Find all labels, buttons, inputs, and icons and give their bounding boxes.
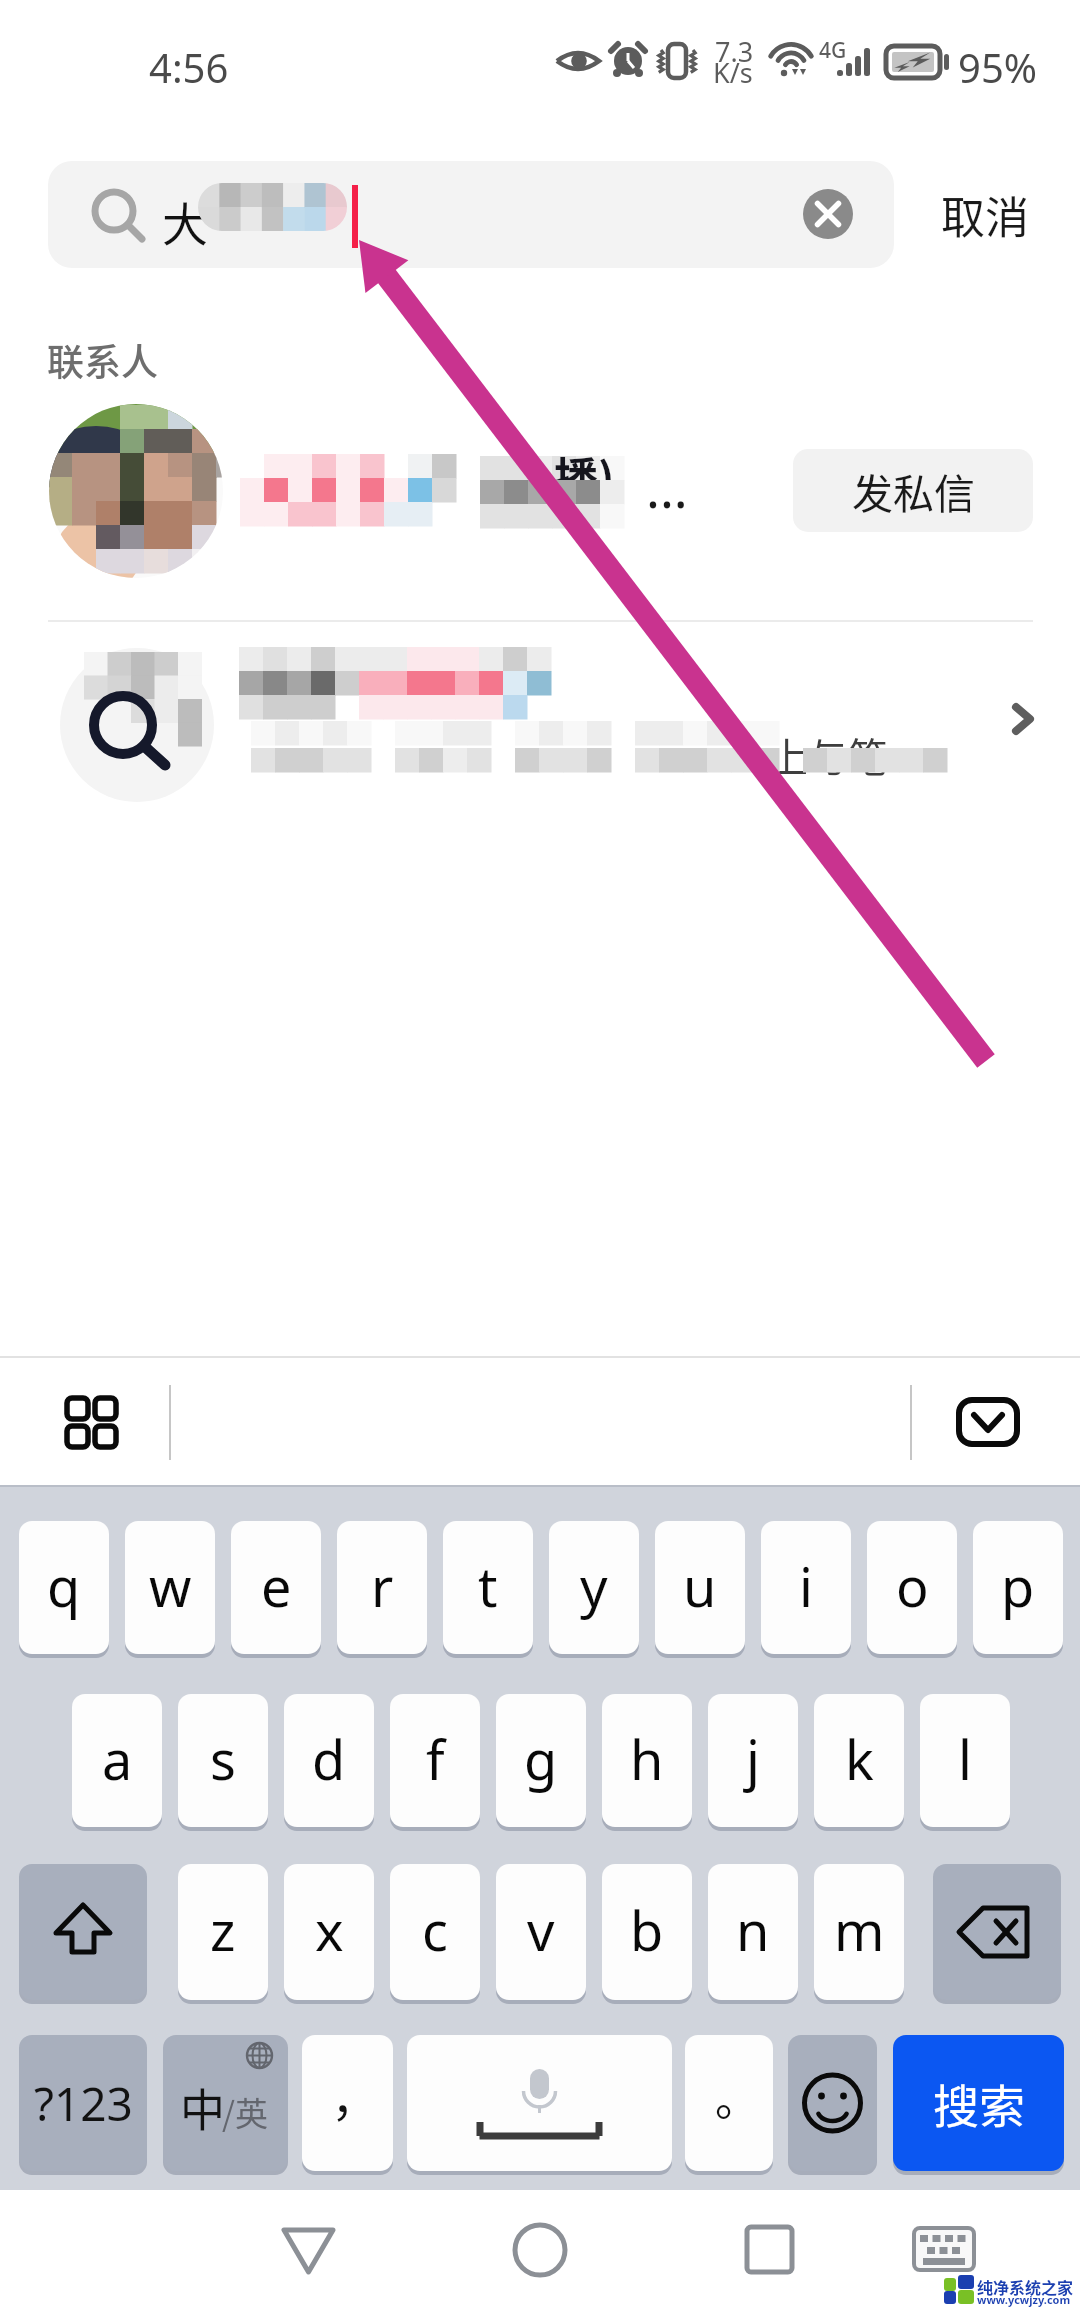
staticText: 4G (819, 36, 847, 65)
staticText: s (210, 1722, 236, 1796)
staticText: v (527, 1893, 555, 1967)
button[interactable]: q (19, 1521, 109, 1654)
staticText: 联系人 (47, 333, 158, 387)
staticText: m (834, 1893, 885, 1967)
staticText: 95% (958, 40, 1037, 94)
staticText: 上与笔 (768, 726, 888, 784)
staticText: z (210, 1893, 236, 1967)
button[interactable]: e (231, 1521, 321, 1654)
button[interactable]: 大 (48, 161, 894, 268)
staticText: 大 (162, 188, 208, 255)
button[interactable]: c (390, 1864, 480, 2000)
staticText: 搜索 (933, 2070, 1025, 2137)
button[interactable]: h (602, 1694, 692, 1827)
button[interactable]: o (867, 1521, 957, 1654)
staticText: 4:56 (149, 40, 229, 94)
staticText: 发私信 (852, 461, 975, 520)
staticText: K/s (713, 54, 753, 91)
staticText: b (630, 1893, 664, 1967)
staticText: f (426, 1722, 445, 1796)
staticText: 7.3 (715, 33, 754, 70)
staticText: ?123 (34, 2072, 133, 2135)
button[interactable]: 。 (685, 2035, 773, 2171)
button[interactable]: Clear text (803, 189, 853, 239)
other: Space (407, 2035, 672, 2171)
button[interactable]: Backspace (933, 1864, 1061, 2000)
button[interactable]: Space (407, 2035, 672, 2171)
staticText: u (683, 1549, 717, 1623)
staticText: q (47, 1549, 81, 1623)
staticText: t (478, 1549, 498, 1623)
staticText: g (524, 1722, 558, 1796)
button[interactable]: s (178, 1694, 268, 1827)
button[interactable]: z (178, 1864, 268, 2000)
staticText: /英 (222, 2088, 268, 2136)
button[interactable]: x (284, 1864, 374, 2000)
button[interactable]: Emoji (788, 2035, 877, 2171)
staticText: w (149, 1549, 192, 1623)
button[interactable]: g (496, 1694, 586, 1827)
button[interactable]: w (125, 1521, 215, 1654)
staticText: a (102, 1722, 133, 1796)
staticText: www.ycwjzy.com (977, 2292, 1071, 2307)
staticText: o (896, 1549, 929, 1623)
staticText: i (799, 1549, 813, 1623)
staticText: 纯净系统之家 (977, 2275, 1074, 2298)
staticText: d (312, 1722, 346, 1796)
button[interactable]: j (708, 1694, 798, 1827)
staticText: ... (646, 452, 688, 523)
other: Shift (19, 1864, 147, 2000)
button[interactable]: 取消 (920, 161, 1050, 268)
staticText: e (261, 1549, 292, 1623)
staticText: 播) (554, 444, 615, 508)
staticText: ， (331, 2060, 380, 2130)
button[interactable]: n (708, 1864, 798, 2000)
staticText: 取消 (941, 183, 1029, 247)
button[interactable]: 搜索 (893, 2035, 1064, 2171)
button[interactable]: p (973, 1521, 1063, 1654)
other: Emoji (788, 2035, 877, 2171)
staticText: n (736, 1893, 770, 1967)
button[interactable]: 中 (163, 2035, 288, 2171)
staticText: h (630, 1722, 664, 1796)
staticText: y (580, 1549, 608, 1623)
staticText: r (371, 1549, 394, 1623)
staticText: 中 (180, 2075, 226, 2140)
button[interactable]: k (814, 1694, 904, 1827)
button[interactable]: ， (302, 2035, 393, 2171)
button[interactable]: a (72, 1694, 162, 1827)
other: Backspace (933, 1864, 1061, 2000)
staticText: p (1001, 1549, 1035, 1623)
button[interactable]: b (602, 1864, 692, 2000)
staticText: k (845, 1722, 874, 1796)
staticText: j (746, 1722, 760, 1796)
button[interactable]: ?123 (19, 2035, 147, 2171)
button[interactable]: v (496, 1864, 586, 2000)
button[interactable]: r (337, 1521, 427, 1654)
button[interactable]: u (655, 1521, 745, 1654)
button[interactable]: 发私信 (793, 449, 1033, 532)
button[interactable]: l (920, 1694, 1010, 1827)
staticText: l (958, 1722, 972, 1796)
button[interactable]: Open (995, 690, 1053, 748)
staticText: x (315, 1893, 344, 1967)
button[interactable]: Shift (19, 1864, 147, 2000)
button[interactable]: y (549, 1521, 639, 1654)
staticText: c (422, 1893, 448, 1967)
button[interactable]: d (284, 1694, 374, 1827)
button[interactable]: i (761, 1521, 851, 1654)
button[interactable]: Hide keyboard (956, 1397, 1020, 1447)
button[interactable]: f (390, 1694, 480, 1827)
button[interactable]: Keyboard layouts (56, 1387, 126, 1457)
button[interactable]: m (814, 1864, 904, 2000)
button[interactable]: t (443, 1521, 533, 1654)
staticText: 。 (715, 2065, 759, 2129)
